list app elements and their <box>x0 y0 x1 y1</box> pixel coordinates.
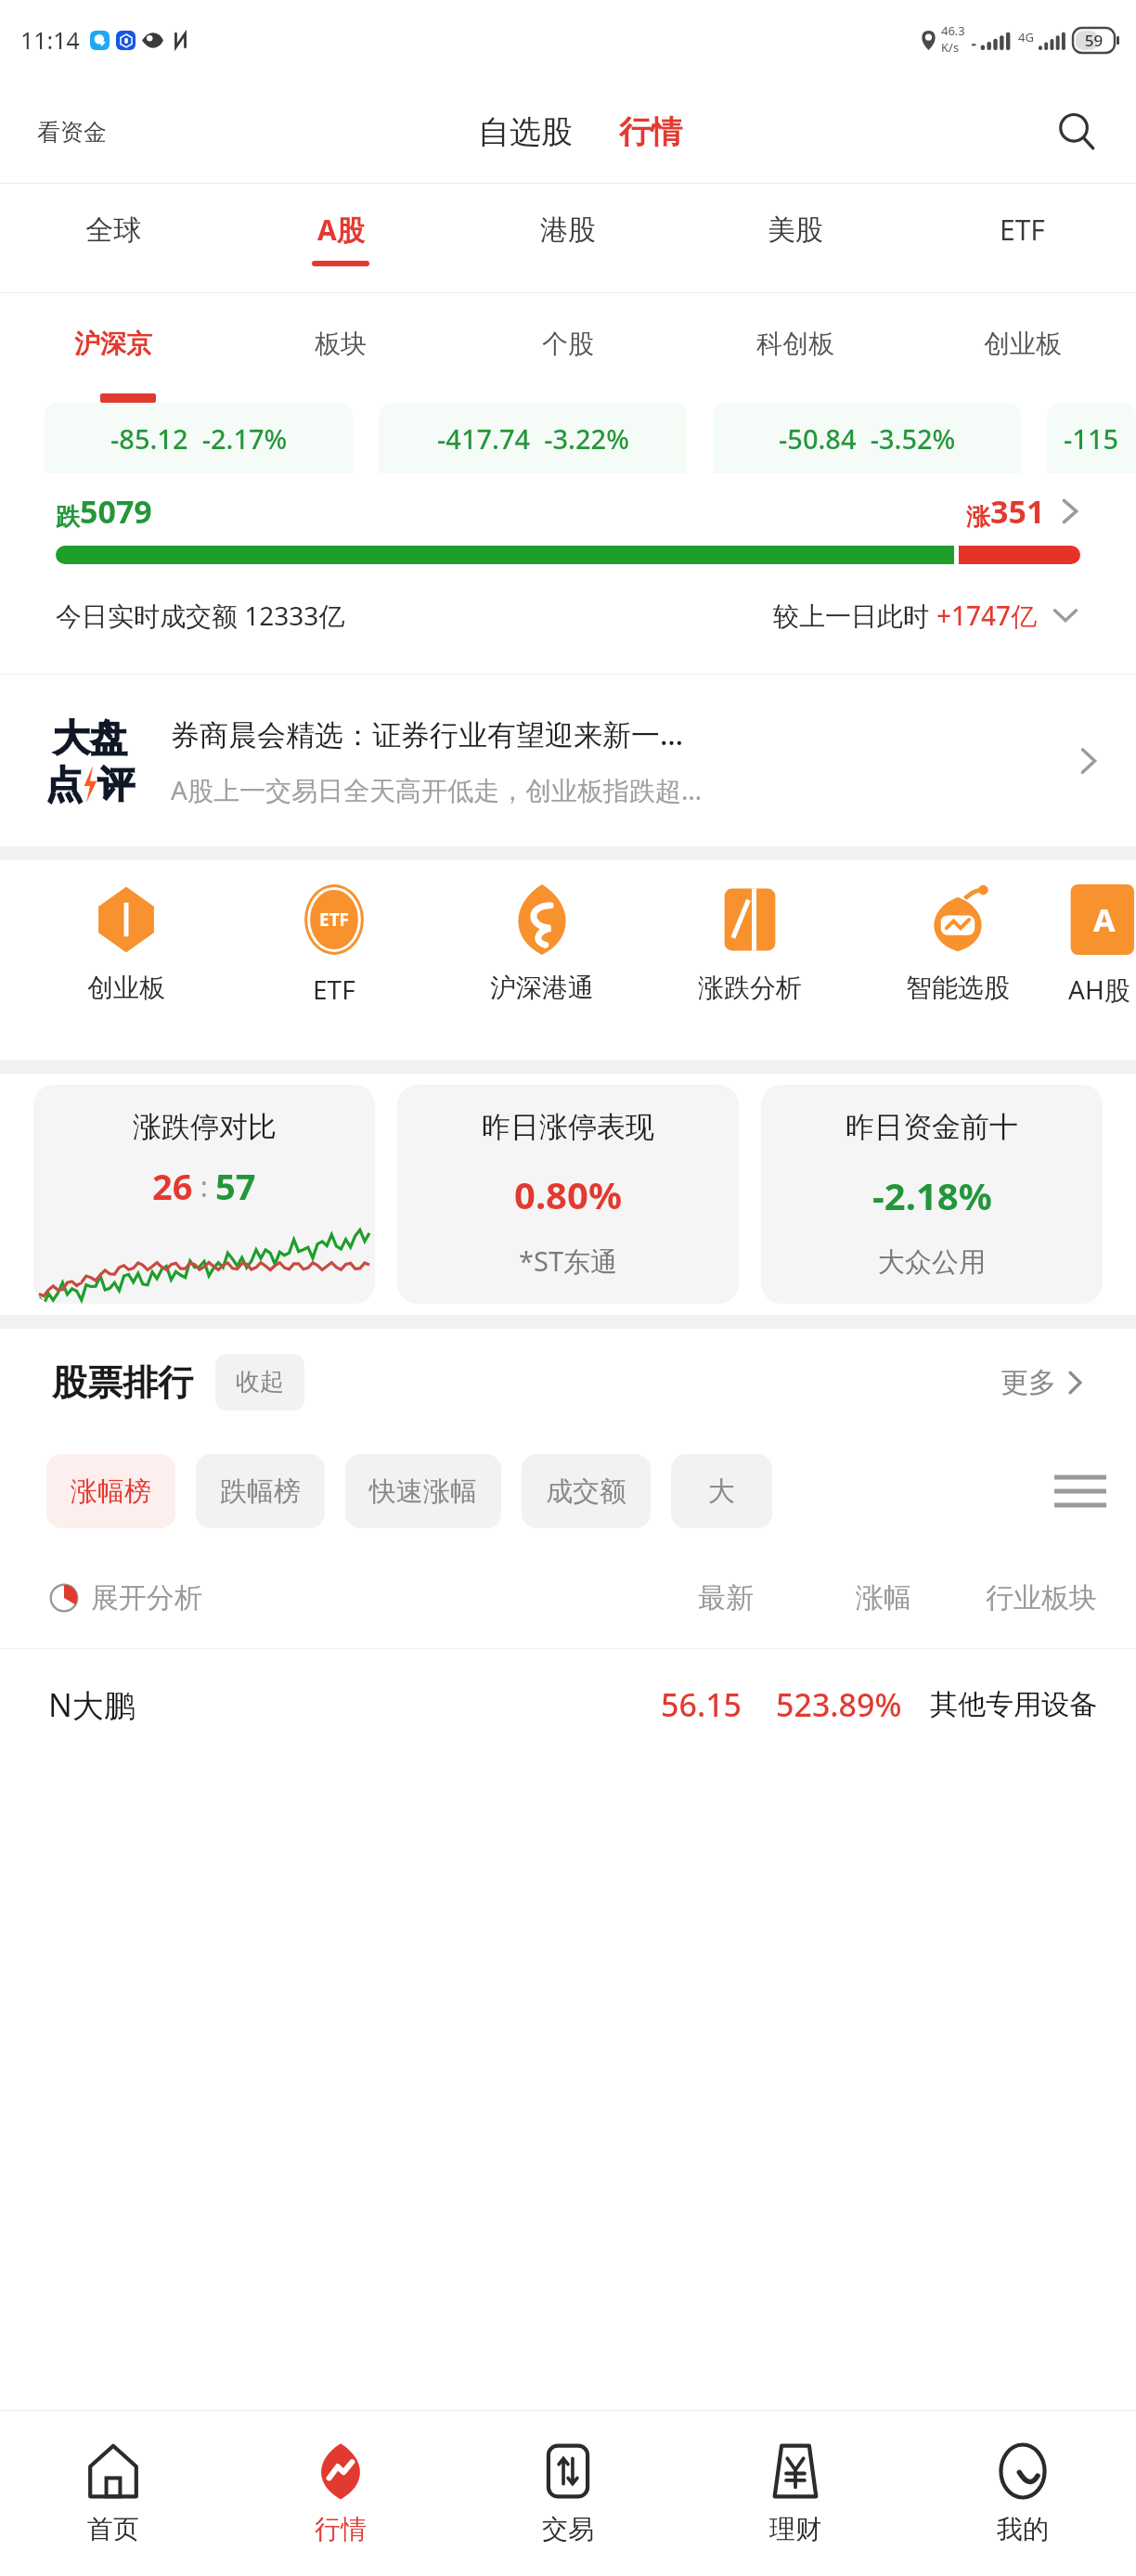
staticText: AH股 <box>1068 972 1130 1007</box>
button[interactable]: 昨日资金前十 <box>761 1085 1103 1304</box>
button[interactable]: -50.84 -3.52% <box>713 403 1021 473</box>
staticText: 涨幅榜 <box>71 1475 151 1509</box>
staticText: +1747亿 <box>936 598 1038 633</box>
staticText: 看资金 <box>37 118 107 147</box>
button[interactable]: 成交额 <box>522 1454 651 1528</box>
button[interactable]: 收起 <box>215 1354 304 1410</box>
staticText: *ST东通 <box>519 1243 618 1280</box>
staticText: 理财 <box>769 2513 821 2545</box>
staticText: 交易 <box>542 2513 594 2545</box>
button[interactable]: 沪深港通 <box>438 884 646 1004</box>
button[interactable]: ETF <box>909 184 1136 293</box>
button[interactable]: -417.74 -3.22% <box>379 403 687 473</box>
button[interactable]: 大 <box>671 1454 772 1528</box>
staticText: 股票排行 <box>52 1360 193 1405</box>
button[interactable]: 创业板 <box>22 884 230 1004</box>
button[interactable]: 全球 <box>0 184 226 293</box>
button[interactable]: 快速涨幅 <box>345 1454 501 1528</box>
staticText: A股 <box>317 211 365 249</box>
staticText: 成交额 <box>546 1475 626 1509</box>
button[interactable]: 理财 <box>681 2411 909 2576</box>
button[interactable]: 美股 <box>681 184 909 293</box>
button[interactable]: 港股 <box>454 184 681 293</box>
staticText: 其他专用设备 <box>930 1687 1097 1722</box>
staticText: 较上一日此时 <box>773 598 936 633</box>
staticText: -2.18% <box>872 1170 992 1220</box>
button[interactable]: 跌 <box>56 473 1080 564</box>
staticText: 港股 <box>540 213 596 248</box>
staticText: 46.3 <box>941 22 965 39</box>
button[interactable]: 板块 <box>226 293 454 393</box>
staticText: 券商晨会精选：证券行业有望迎来新一… <box>171 715 684 753</box>
staticText: 点 <box>45 761 83 807</box>
staticText: 57 <box>215 1162 256 1210</box>
button[interactable]: 行情 <box>610 107 691 158</box>
button[interactable]: 今日实时成交额 12333亿 <box>56 564 1080 666</box>
button[interactable]: More lists <box>1025 1436 1136 1547</box>
staticText: 评 <box>97 761 135 807</box>
button[interactable]: A股 <box>226 184 454 293</box>
staticText: 5079 <box>80 490 152 533</box>
staticText: 创业板 <box>984 328 1062 360</box>
staticText: 沪深港通 <box>490 972 594 1004</box>
staticText: 个股 <box>542 328 594 360</box>
staticText: 351 <box>990 490 1045 533</box>
staticText: 涨 <box>966 502 990 533</box>
staticText: 大盘 <box>53 715 127 761</box>
staticText: 大众公用 <box>878 1245 986 1280</box>
staticText: 涨跌停对比 <box>133 1109 277 1145</box>
button[interactable]: 创业板 <box>909 293 1136 393</box>
button[interactable]: 更多 <box>1000 1365 1084 1400</box>
staticText: 行情 <box>619 112 682 152</box>
button[interactable]: 沪深京 <box>0 293 226 393</box>
button[interactable]: 大盘 <box>0 675 1136 846</box>
staticText: 自选股 <box>478 112 573 152</box>
button[interactable]: 涨跌停对比 <box>33 1085 375 1304</box>
button[interactable]: 跌幅榜 <box>196 1454 325 1528</box>
button[interactable]: 涨跌分析 <box>646 884 854 1004</box>
button[interactable]: 自选股 <box>469 107 582 158</box>
button[interactable]: 科创板 <box>681 293 909 393</box>
staticText: A <box>1093 898 1116 941</box>
staticText: ETF <box>313 972 355 1007</box>
button[interactable]: 看资金 <box>33 114 110 150</box>
button[interactable]: 我的 <box>909 2411 1136 2576</box>
staticText: 更多 <box>1000 1365 1056 1400</box>
button[interactable]: 首页 <box>0 2411 226 2576</box>
staticText: 涨幅 <box>856 1580 911 1616</box>
button[interactable]: N大鹏 <box>0 1649 1136 1760</box>
staticText: 跌 <box>56 502 80 533</box>
staticText: 创业板 <box>87 972 165 1004</box>
staticText: 全球 <box>85 213 141 248</box>
staticText: 昨日涨停表现 <box>482 1109 654 1145</box>
button[interactable]: A <box>1062 884 1136 1007</box>
button[interactable]: ETF <box>230 884 438 1007</box>
staticText: N大鹏 <box>48 1683 136 1726</box>
staticText: 美股 <box>768 213 823 248</box>
staticText: -85.12 -2.17% <box>110 420 288 457</box>
staticText: -50.84 -3.52% <box>779 420 956 457</box>
button[interactable]: Search <box>1051 106 1103 158</box>
staticText: 行业板块 <box>986 1580 1097 1616</box>
button[interactable]: -85.12 -2.17% <box>45 403 353 473</box>
staticText: 昨日资金前十 <box>846 1109 1018 1145</box>
staticText: 大 <box>708 1475 735 1509</box>
button[interactable]: 交易 <box>454 2411 681 2576</box>
staticText: 523.89% <box>776 1683 902 1726</box>
button[interactable]: 行情 <box>226 2411 454 2576</box>
staticText: 跌幅榜 <box>220 1475 301 1509</box>
button[interactable]: 展开分析 <box>48 1580 202 1616</box>
staticText: 快速涨幅 <box>369 1475 477 1509</box>
staticText: 首页 <box>87 2513 139 2545</box>
staticText: 4G <box>1018 29 1034 45</box>
button[interactable]: 智能选股 <box>854 884 1062 1004</box>
button[interactable]: -115 <box>1047 403 1136 473</box>
button[interactable]: 涨幅榜 <box>46 1454 175 1528</box>
staticText: ETF <box>319 908 350 932</box>
staticText: 板块 <box>315 328 367 360</box>
staticText: 26 <box>152 1162 193 1210</box>
staticText: 我的 <box>997 2513 1049 2545</box>
button[interactable]: 个股 <box>454 293 681 393</box>
staticText: 行情 <box>315 2513 367 2545</box>
button[interactable]: 昨日涨停表现 <box>397 1085 739 1304</box>
